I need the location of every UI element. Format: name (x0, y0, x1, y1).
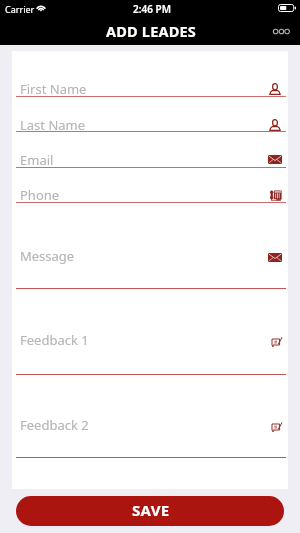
staticText: Last Name (20, 116, 86, 131)
button[interactable]: SAVE (16, 496, 284, 526)
staticText: ADD LEADES (106, 21, 197, 41)
button[interactable]: Email (12, 152, 288, 168)
staticText: Message (20, 247, 75, 265)
staticText: 2:46 PM (133, 2, 171, 16)
button[interactable]: More options (271, 22, 293, 44)
staticText: Feedback 2 (20, 416, 89, 434)
staticText: Email (20, 151, 54, 167)
other: Email (268, 155, 282, 169)
button[interactable]: First Name (12, 81, 288, 97)
staticText: Feedback 1 (20, 331, 89, 349)
button[interactable]: Phone (12, 187, 288, 203)
other: Person (269, 119, 281, 131)
staticText: Carrier (5, 3, 35, 15)
other: Email (268, 253, 282, 267)
other: Feedback (270, 421, 282, 433)
other: Feedback (270, 336, 282, 348)
button[interactable]: Last Name (12, 117, 288, 132)
button[interactable]: Feedback 2 (12, 417, 288, 458)
staticText: First Name (20, 80, 87, 96)
other: Person (269, 83, 281, 95)
button[interactable]: Feedback 1 (12, 332, 288, 375)
button[interactable]: Message (12, 248, 288, 289)
staticText: SAVE (132, 500, 170, 520)
staticText: Phone (20, 186, 60, 202)
other: Phone (270, 189, 282, 201)
